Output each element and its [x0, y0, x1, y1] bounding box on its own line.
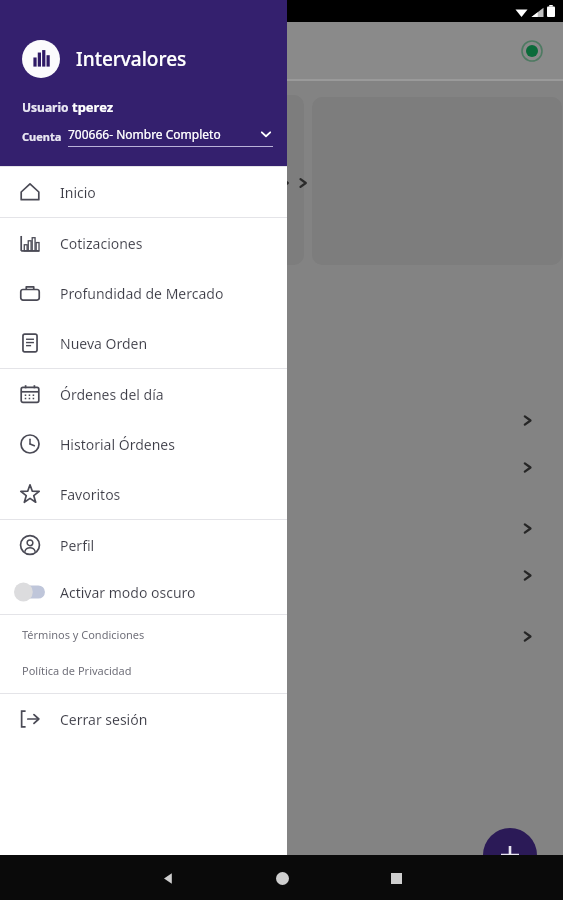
staticText: Cerrar sesión — [60, 710, 148, 729]
staticText: Profundidad de Mercado — [60, 284, 224, 303]
button[interactable]: Recientes — [383, 865, 409, 891]
staticText: 700666- Nombre Completo — [68, 126, 221, 142]
staticText: Política de Privacidad — [22, 663, 132, 678]
staticText: Perfil — [60, 536, 95, 555]
button[interactable]: Favoritos — [0, 469, 287, 519]
button[interactable]: Perfil — [0, 520, 287, 570]
staticText: Órdenes del día — [60, 385, 164, 404]
button[interactable]: Órdenes del día — [0, 369, 287, 419]
button[interactable]: 700666- Nombre Completo — [68, 126, 273, 147]
button[interactable]: Inicio — [269, 865, 295, 891]
button[interactable] — [14, 95, 304, 265]
staticText: Historial Órdenes — [60, 435, 175, 454]
staticText: tperez — [72, 98, 114, 116]
staticText: Intervalores — [76, 46, 187, 72]
button[interactable]: Nueva Orden — [0, 318, 287, 368]
button[interactable] — [0, 505, 563, 551]
button[interactable]: Política de Privacidad — [0, 659, 287, 682]
staticText: Términos y Condiciones — [22, 627, 145, 642]
button[interactable]: Cotizaciones — [0, 218, 287, 268]
staticText: Activar modo oscuro — [60, 583, 196, 602]
staticText: Inicio — [60, 183, 96, 202]
button[interactable] — [0, 444, 563, 490]
button[interactable]: Atrás — [155, 865, 181, 891]
button[interactable] — [0, 397, 563, 443]
button[interactable]: Agregar — [483, 828, 537, 882]
button[interactable]: Inicio — [0, 167, 287, 217]
staticText: Cuenta — [22, 129, 62, 144]
staticText: Favoritos — [60, 485, 121, 504]
staticText: Cotizaciones — [60, 234, 143, 253]
staticText: Nueva Orden — [60, 334, 148, 353]
button[interactable]: Estado de conexión — [521, 40, 543, 62]
button[interactable]: Historial Órdenes — [0, 419, 287, 469]
button[interactable]: Términos y Condiciones — [0, 623, 287, 646]
staticText: Usuario — [22, 99, 72, 115]
button[interactable]: Profundidad de Mercado — [0, 268, 287, 318]
button[interactable]: Activar modo oscuro — [0, 570, 287, 614]
button[interactable] — [0, 613, 563, 659]
button[interactable]: Cerrar sesión — [0, 694, 287, 744]
button[interactable] — [0, 552, 563, 598]
